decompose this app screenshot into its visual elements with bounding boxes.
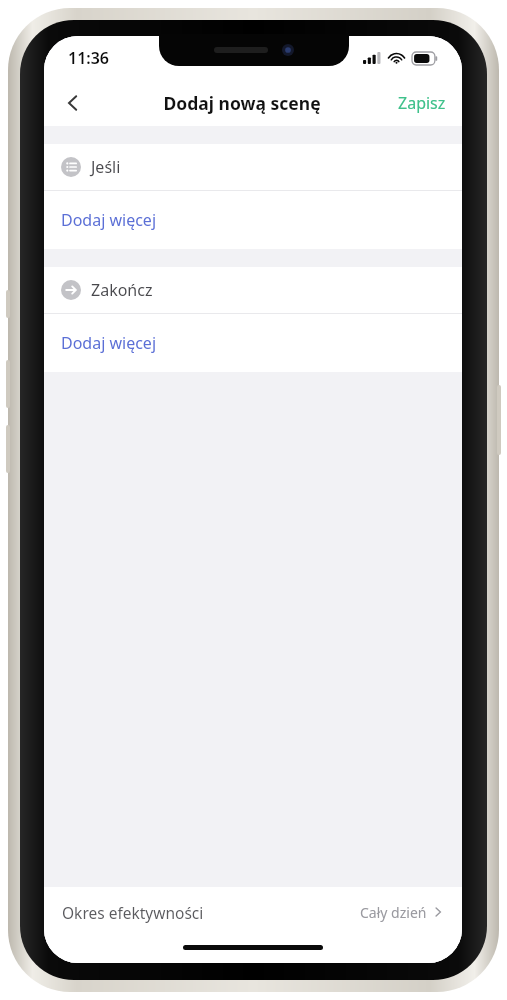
button[interactable]: Dodaj więcej [44,314,462,372]
staticText: Cały dzień [360,903,427,922]
staticText: Dodaj nową scenę [163,91,321,115]
button[interactable]: Jeśli [44,144,462,190]
staticText: Dodaj więcej [61,209,157,231]
button[interactable]: Back [44,80,102,126]
button[interactable]: Zapisz [382,80,462,126]
staticText: Zapisz [398,92,446,114]
staticText: 11:36 [68,47,110,69]
staticText: Jeśli [91,156,121,178]
staticText: Okres efektywności [62,902,204,923]
button[interactable]: Dodaj więcej [44,191,462,249]
button[interactable]: Zakończ [44,267,462,313]
staticText: Zakończ [91,279,153,301]
button[interactable]: Okres efektywności [44,887,462,937]
staticText: Dodaj więcej [61,332,157,354]
